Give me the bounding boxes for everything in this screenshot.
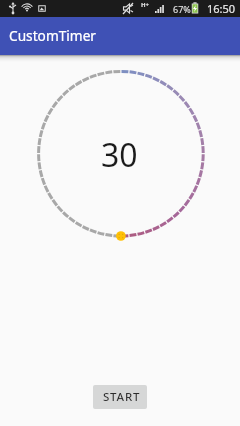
staticText: CustomTimer [9,26,96,45]
staticText: H+ [141,1,150,9]
staticText: 16:50 [207,1,236,16]
staticText: 67% [173,3,191,15]
staticText: 30 [101,133,138,177]
staticText: START [103,389,141,405]
button[interactable]: START [93,385,147,409]
